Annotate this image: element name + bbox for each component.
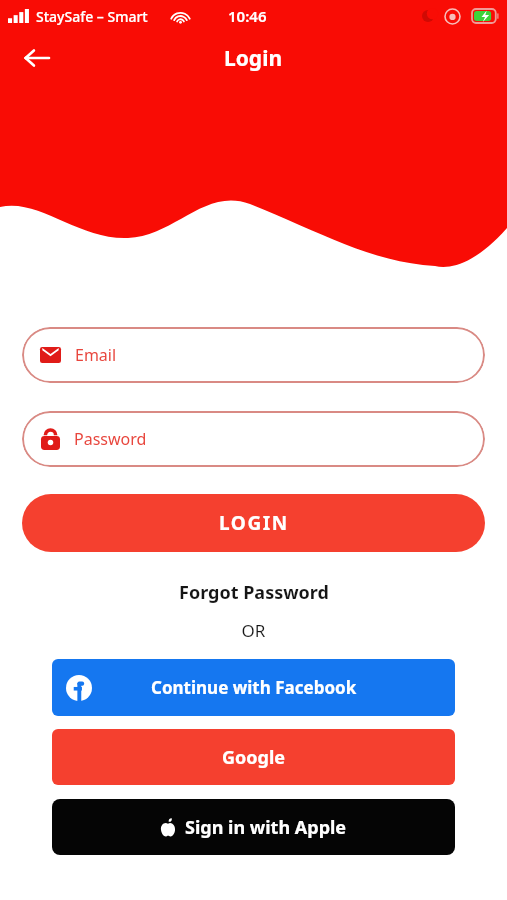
button[interactable]: Back bbox=[12, 34, 60, 82]
staticText: Continue with Facebook bbox=[151, 676, 357, 699]
staticText: Google bbox=[222, 745, 286, 770]
staticText: Sign in with Apple bbox=[185, 815, 347, 840]
staticText: OR bbox=[0, 619, 507, 642]
staticText: Password bbox=[74, 428, 147, 450]
button[interactable]: Continue with Facebook bbox=[52, 659, 455, 716]
button[interactable]: Email bbox=[22, 327, 485, 383]
staticText: Email bbox=[75, 344, 117, 366]
button[interactable]: Sign in with Apple bbox=[52, 799, 455, 855]
staticText: Forgot Password bbox=[179, 580, 329, 605]
button[interactable]: LOGIN bbox=[22, 494, 485, 552]
button[interactable]: Password bbox=[22, 411, 485, 467]
staticText: StaySafe – Smart bbox=[36, 7, 148, 26]
staticText: 10:46 bbox=[228, 6, 267, 26]
button[interactable]: Forgot Password bbox=[0, 580, 507, 605]
staticText: Login bbox=[224, 44, 283, 73]
staticText: LOGIN bbox=[219, 510, 289, 536]
button[interactable]: Google bbox=[52, 729, 455, 785]
